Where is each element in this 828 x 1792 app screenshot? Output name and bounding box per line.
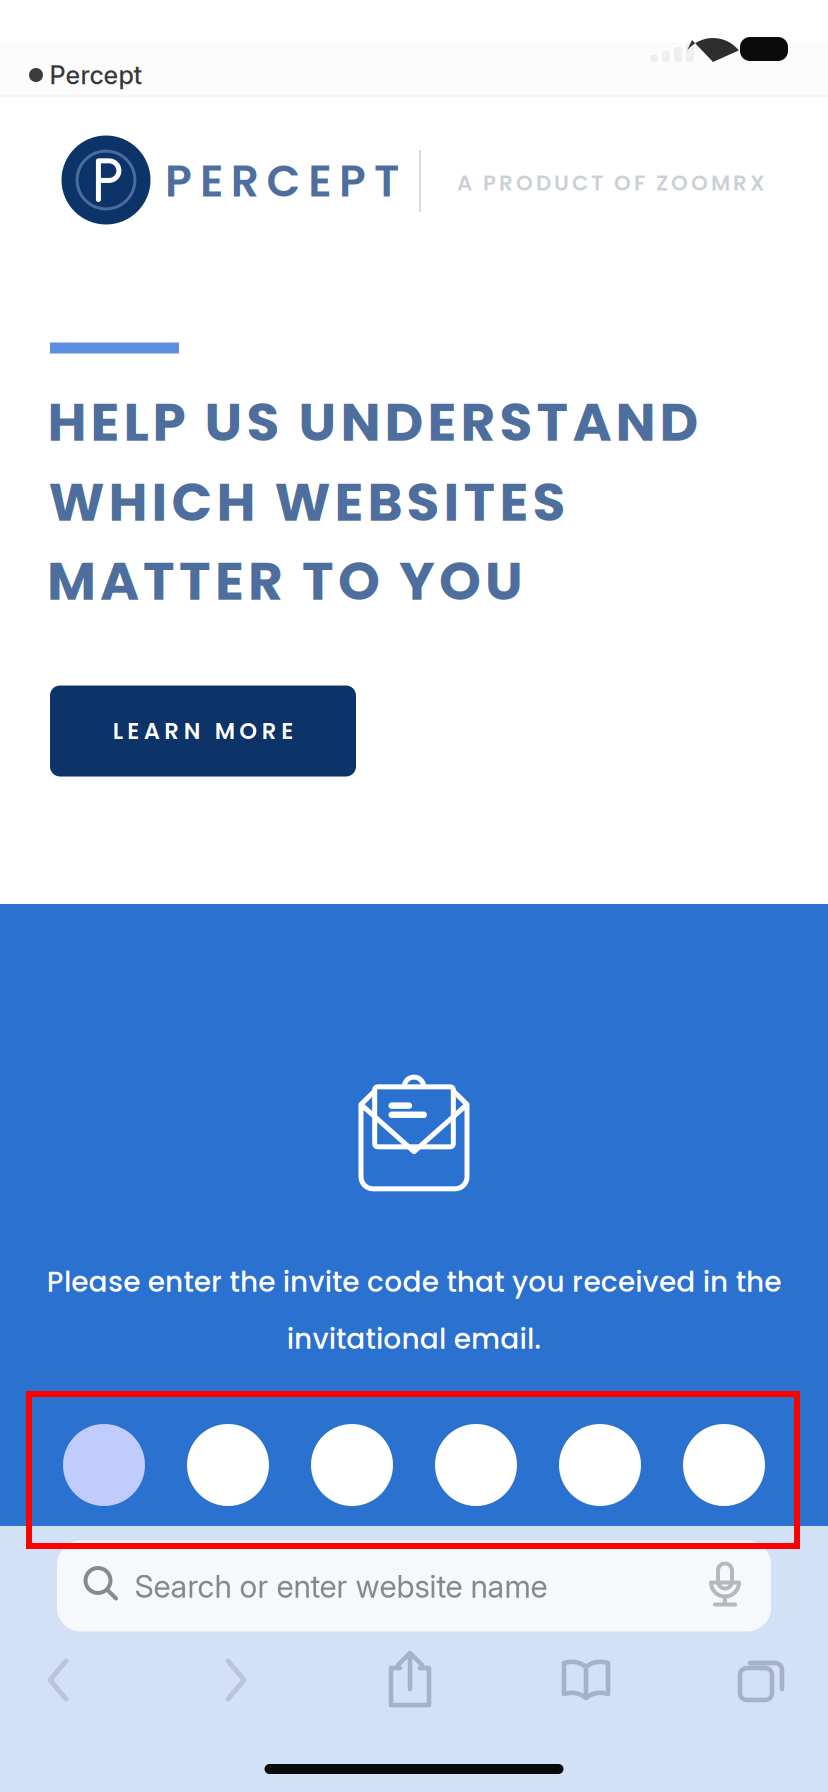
button[interactable]: Bookmarks xyxy=(549,1648,623,1712)
staticText: Percept xyxy=(49,60,142,90)
staticText: LEARN MORE xyxy=(113,715,293,747)
staticText: Search or enter website name xyxy=(134,1568,547,1605)
button[interactable]: Tabs xyxy=(724,1648,798,1712)
staticText: A PRODUCT OF ZOOMRX xyxy=(457,168,765,198)
button[interactable]: LEARN MORE xyxy=(50,685,356,776)
button[interactable]: Search or enter website name xyxy=(57,1540,771,1631)
staticText: PERCEPT xyxy=(165,150,399,212)
button[interactable]: Forward xyxy=(199,1648,273,1712)
staticText: invitational email. xyxy=(287,1319,541,1359)
button[interactable]: Share xyxy=(373,1643,447,1717)
staticText: WHICH WEBSITES xyxy=(48,465,565,539)
staticText: Please enter the invite code that you re… xyxy=(47,1262,781,1302)
staticText: MATTER TO YOU xyxy=(47,544,523,618)
button[interactable]: Back xyxy=(21,1648,95,1712)
staticText: HELP US UNDERSTAND xyxy=(47,385,698,459)
